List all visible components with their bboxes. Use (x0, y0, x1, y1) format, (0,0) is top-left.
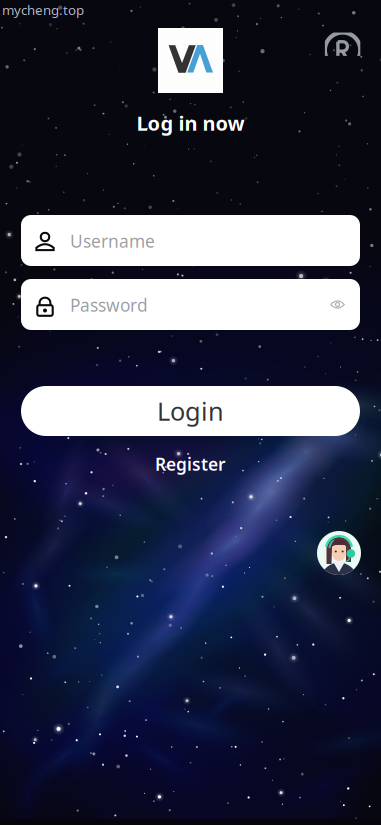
button[interactable]: Password (21, 279, 360, 330)
button[interactable]: Customer support (317, 531, 361, 575)
staticText: Register (155, 452, 226, 475)
staticText: Password (70, 293, 148, 316)
staticText: mycheng.top (2, 1, 84, 19)
button[interactable]: Register (147, 452, 233, 476)
staticText: Log in now (136, 110, 244, 136)
staticText: Login (157, 394, 224, 428)
staticText: Username (70, 229, 155, 252)
button[interactable]: Login (21, 386, 360, 436)
button[interactable]: Username (21, 215, 360, 266)
